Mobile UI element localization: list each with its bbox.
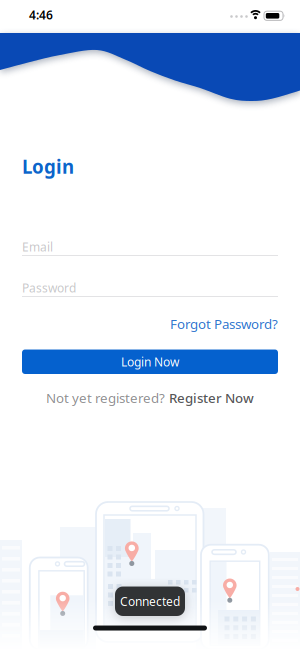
staticText: Password bbox=[22, 280, 76, 296]
staticText: Register Now bbox=[169, 389, 254, 407]
button[interactable]: Forgot Password? bbox=[170, 315, 278, 333]
staticText: Not yet registered? bbox=[46, 389, 165, 407]
staticText: Email bbox=[22, 239, 53, 255]
staticText: 4:46 bbox=[29, 7, 53, 23]
button[interactable]: Register Now bbox=[169, 389, 254, 407]
staticText: Forgot Password? bbox=[170, 315, 278, 333]
staticText: Login bbox=[22, 154, 74, 179]
button[interactable]: Email bbox=[22, 239, 278, 256]
staticText: Login Now bbox=[121, 354, 179, 370]
button[interactable]: Password bbox=[22, 280, 278, 297]
button[interactable]: Login Now bbox=[22, 349, 278, 374]
staticText: Connected bbox=[120, 593, 180, 609]
